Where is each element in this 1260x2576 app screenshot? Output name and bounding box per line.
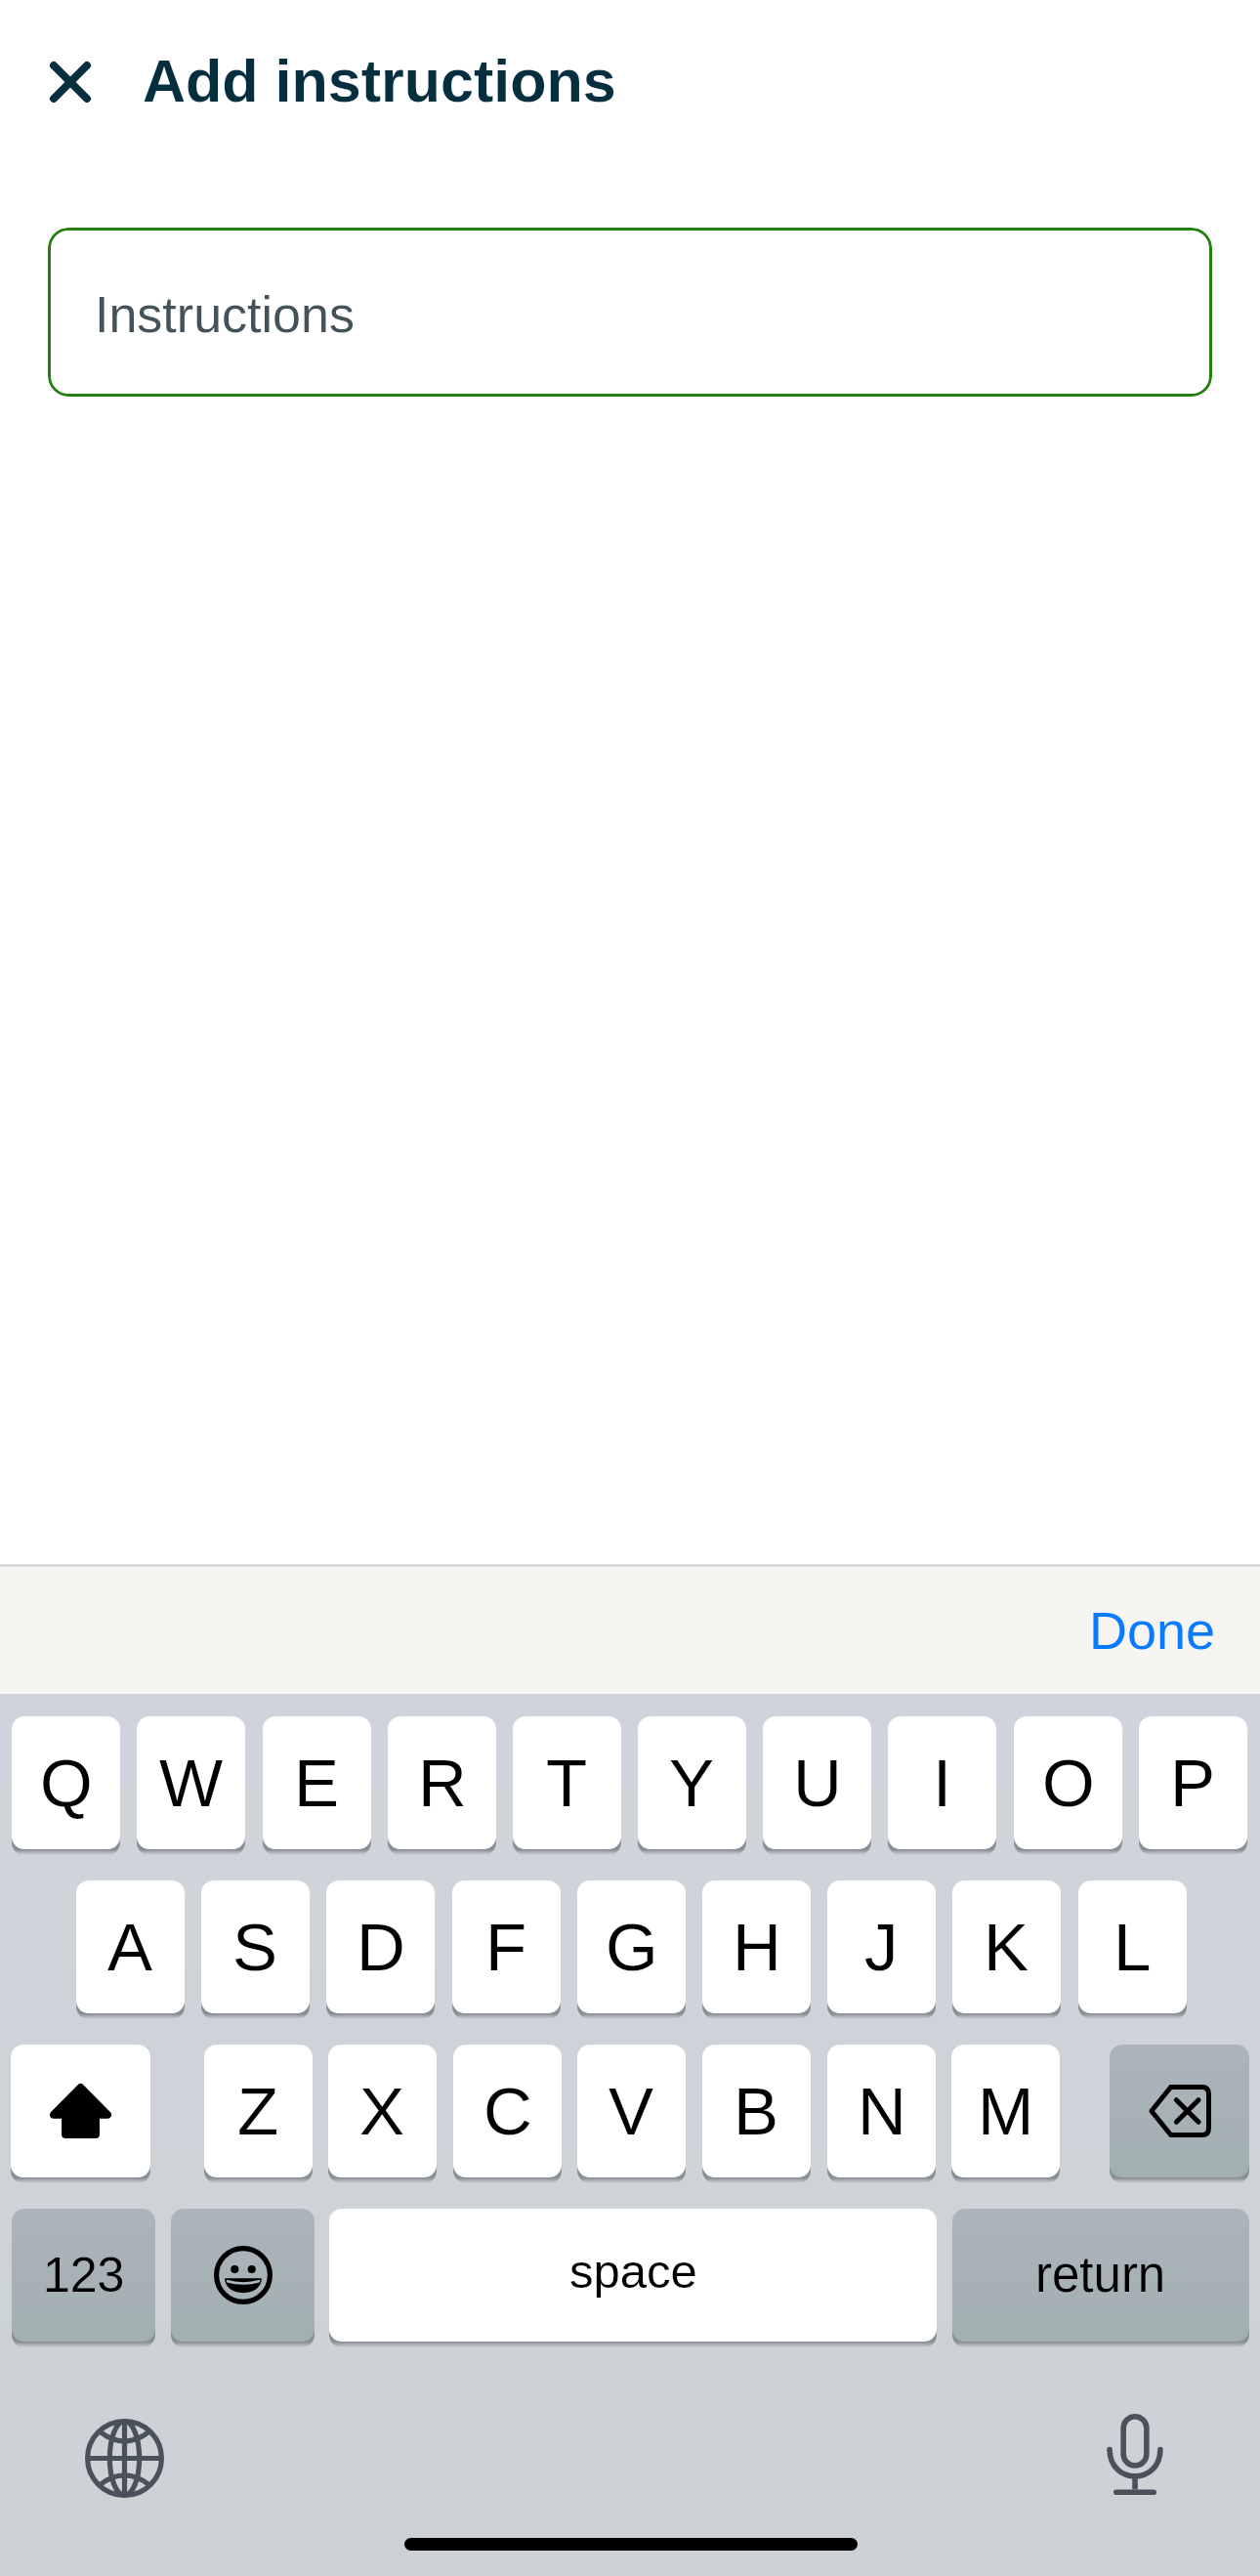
button[interactable]: S xyxy=(201,1880,310,2013)
staticText: Instructions xyxy=(95,286,355,343)
staticText: M xyxy=(978,2074,1034,2149)
staticText: J xyxy=(864,1910,899,1985)
staticText: R xyxy=(418,1746,467,1821)
button[interactable]: T xyxy=(513,1716,621,1849)
staticText: G xyxy=(606,1910,658,1985)
button[interactable]: L xyxy=(1078,1880,1187,2013)
staticText: F xyxy=(485,1910,527,1985)
staticText: O xyxy=(1042,1746,1095,1821)
button[interactable]: K xyxy=(952,1880,1061,2013)
button[interactable]: Z xyxy=(204,2045,313,2177)
staticText: Q xyxy=(40,1746,93,1821)
button[interactable]: Backspace xyxy=(1110,2045,1249,2177)
button[interactable]: C xyxy=(453,2045,562,2177)
button[interactable]: P xyxy=(1139,1716,1247,1849)
staticText: L xyxy=(1113,1910,1152,1985)
button[interactable]: U xyxy=(763,1716,871,1849)
button[interactable]: Dictate xyxy=(1104,2414,1166,2495)
button[interactable]: V xyxy=(577,2045,686,2177)
button[interactable]: G xyxy=(577,1880,686,2013)
button[interactable]: 123 xyxy=(12,2209,155,2342)
staticText: D xyxy=(357,1910,405,1985)
button[interactable]: H xyxy=(702,1880,811,2013)
staticText: N xyxy=(858,2074,906,2149)
staticText: B xyxy=(734,2074,779,2149)
staticText: I xyxy=(933,1746,952,1821)
button[interactable]: W xyxy=(137,1716,245,1849)
button[interactable]: B xyxy=(702,2045,811,2177)
button[interactable]: space xyxy=(329,2209,937,2342)
staticText: T xyxy=(546,1746,588,1821)
staticText: W xyxy=(159,1746,224,1821)
button[interactable]: Instructions xyxy=(48,228,1212,397)
button[interactable]: Y xyxy=(638,1716,746,1849)
button[interactable]: X xyxy=(328,2045,437,2177)
button[interactable]: D xyxy=(326,1880,435,2013)
button[interactable]: F xyxy=(452,1880,561,2013)
button[interactable]: Shift xyxy=(11,2045,150,2177)
staticText: C xyxy=(483,2074,532,2149)
button[interactable]: O xyxy=(1014,1716,1122,1849)
staticText: H xyxy=(733,1910,781,1985)
button[interactable]: I xyxy=(888,1716,996,1849)
staticText: P xyxy=(1170,1746,1216,1821)
staticText: K xyxy=(984,1910,1029,1985)
staticText: return xyxy=(1035,2247,1166,2302)
staticText: E xyxy=(294,1746,340,1821)
button[interactable]: N xyxy=(827,2045,936,2177)
staticText: A xyxy=(107,1910,153,1985)
button[interactable]: Done xyxy=(1089,1601,1216,1660)
staticText: space xyxy=(569,2245,697,2299)
staticText: Z xyxy=(237,2074,279,2149)
staticText: S xyxy=(232,1910,278,1985)
button[interactable]: J xyxy=(827,1880,936,2013)
button[interactable]: E xyxy=(263,1716,371,1849)
button[interactable]: M xyxy=(951,2045,1060,2177)
staticText: V xyxy=(609,2074,654,2149)
staticText: 123 xyxy=(43,2248,125,2302)
button[interactable]: Close xyxy=(29,41,111,123)
button[interactable]: Q xyxy=(12,1716,120,1849)
button[interactable]: R xyxy=(388,1716,496,1849)
button[interactable]: Emoji xyxy=(171,2209,315,2342)
button[interactable]: Next keyboard xyxy=(85,2419,164,2498)
staticText: U xyxy=(793,1746,842,1821)
staticText: Add instructions xyxy=(143,48,616,114)
staticText: Done xyxy=(1089,1601,1216,1660)
staticText: X xyxy=(359,2074,405,2149)
button[interactable]: A xyxy=(76,1880,185,2013)
button[interactable]: return xyxy=(952,2209,1249,2342)
staticText: Y xyxy=(669,1746,715,1821)
